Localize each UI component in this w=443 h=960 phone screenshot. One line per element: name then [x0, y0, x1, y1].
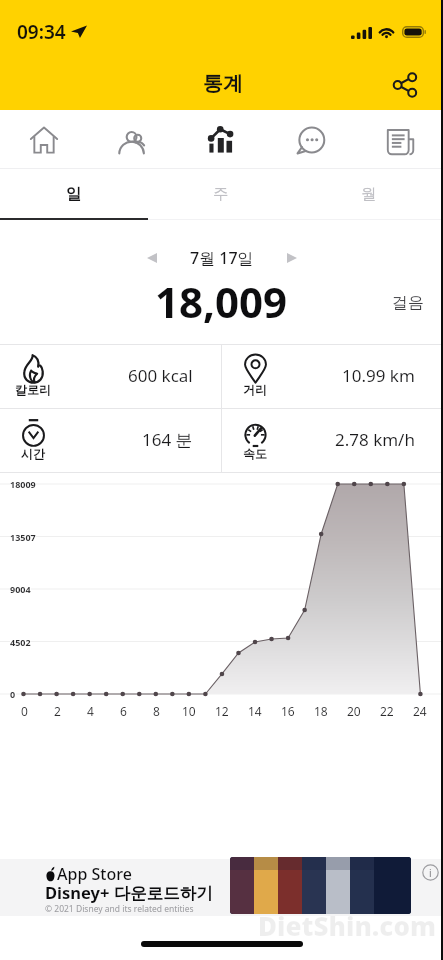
- staticText: DietShin.com: [258, 908, 436, 943]
- staticText: 164 분: [142, 428, 193, 451]
- staticText: Disney+ 다운로드하기: [45, 881, 213, 904]
- staticText: 600 kcal: [128, 364, 193, 387]
- staticText: 0: [21, 703, 28, 719]
- staticText: 4502: [10, 636, 31, 648]
- button[interactable]: Chat: [265, 110, 354, 169]
- staticText: 12: [215, 703, 229, 719]
- staticText: 2.78 km/h: [335, 428, 415, 451]
- button[interactable]: Share: [383, 63, 427, 107]
- button[interactable]: 칼로리: [0, 344, 221, 408]
- staticText: 18009: [10, 478, 36, 490]
- button[interactable]: Next day: [275, 241, 309, 275]
- staticText: 14: [248, 703, 262, 719]
- staticText: 월: [361, 184, 377, 204]
- staticText: App Store: [57, 863, 132, 885]
- button[interactable]: Previous day: [135, 241, 169, 275]
- staticText: 속도: [243, 446, 267, 461]
- button[interactable]: 속도: [222, 408, 443, 472]
- staticText: 9004: [10, 583, 31, 595]
- staticText: i: [429, 866, 432, 880]
- staticText: 22: [380, 703, 394, 719]
- button[interactable]: News: [354, 110, 443, 169]
- staticText: 10: [182, 703, 196, 719]
- staticText: 걸음: [392, 293, 424, 313]
- staticText: 20: [347, 703, 361, 719]
- staticText: 8: [153, 703, 160, 719]
- staticText: 13507: [10, 531, 36, 543]
- button[interactable]: 시간: [0, 408, 221, 472]
- button[interactable]: 거리: [222, 344, 443, 408]
- staticText: 4: [87, 703, 94, 719]
- button[interactable]: Ad information: [422, 864, 439, 881]
- staticText: 18,009: [155, 273, 288, 323]
- staticText: 주: [213, 184, 229, 204]
- button[interactable]: Statistics: [176, 110, 265, 169]
- button[interactable]: 일: [0, 169, 147, 220]
- staticText: 16: [281, 703, 295, 719]
- staticText: 10.99 km: [342, 364, 415, 387]
- staticText: 7월 17일: [190, 247, 254, 269]
- staticText: 칼로리: [15, 382, 51, 397]
- staticText: 일: [66, 184, 82, 204]
- staticText: 통계: [203, 71, 243, 96]
- button[interactable]: [230, 857, 411, 914]
- staticText: 2: [54, 703, 61, 719]
- button[interactable]: Friends: [88, 110, 176, 169]
- button[interactable]: Home: [0, 110, 88, 169]
- staticText: 거리: [243, 382, 267, 397]
- staticText: © 2021 Disney and its related entities: [45, 903, 194, 915]
- button[interactable]: 주: [147, 169, 295, 220]
- staticText: 시간: [21, 446, 45, 461]
- staticText: 0: [10, 688, 16, 700]
- button[interactable]: 월: [295, 169, 443, 220]
- staticText: 09:34: [17, 19, 66, 45]
- staticText: 24: [413, 703, 427, 719]
- staticText: 18: [314, 703, 328, 719]
- staticText: 6: [120, 703, 127, 719]
